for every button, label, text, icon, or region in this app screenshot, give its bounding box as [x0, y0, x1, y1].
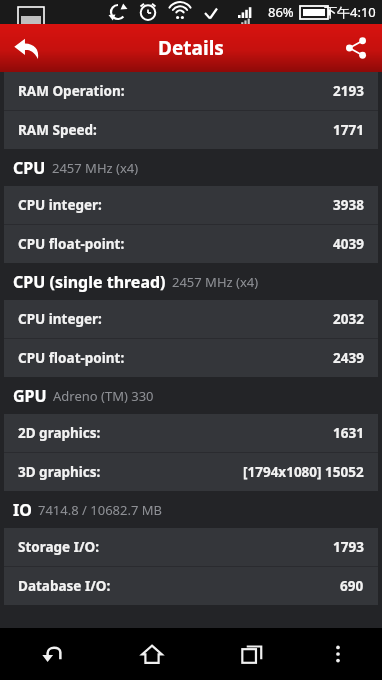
staticText: Database I/O:	[18, 577, 111, 595]
staticText: 1631	[333, 424, 364, 442]
staticText: RAM Operation:	[18, 82, 125, 100]
staticText: 2032	[333, 310, 364, 328]
button[interactable]: CPU float-point:	[4, 225, 378, 263]
button[interactable]: CPU float-point:	[4, 339, 378, 377]
staticText: 3D graphics:	[18, 463, 101, 481]
staticText: RAM Speed:	[18, 121, 97, 139]
staticText: GPU	[13, 385, 47, 407]
staticText: 86%	[268, 3, 294, 21]
staticText: 2D graphics:	[18, 424, 101, 442]
staticText: 7414.8 / 10682.7 MB	[38, 501, 162, 519]
staticText: 690	[340, 577, 364, 595]
button[interactable]: RAM Speed:	[4, 111, 378, 149]
staticText: 2457 MHz (x4)	[172, 273, 259, 291]
button[interactable]: CPU integer:	[4, 186, 378, 224]
staticText: Details	[158, 35, 224, 61]
staticText: 4039	[333, 235, 364, 253]
staticText: 1793	[333, 538, 364, 556]
button[interactable]: Storage I/O:	[4, 528, 378, 566]
staticText: 下午4:10	[324, 3, 376, 21]
staticText: 2439	[333, 349, 364, 367]
staticText: Adreno (TM) 330	[53, 387, 154, 405]
button[interactable]: Database I/O:	[4, 567, 378, 605]
button[interactable]: RAM Operation:	[4, 72, 378, 110]
button[interactable]: Back	[0, 24, 52, 72]
button[interactable]: CPU integer:	[4, 300, 378, 338]
button[interactable]: Back	[27, 628, 77, 680]
staticText: 2193	[333, 82, 364, 100]
staticText: Storage I/O:	[18, 538, 100, 556]
button[interactable]: Home	[127, 628, 177, 680]
staticText: 1771	[333, 121, 364, 139]
staticText: CPU (single thread)	[13, 271, 166, 293]
staticText: 2457 MHz (x4)	[52, 159, 139, 177]
staticText: 3938	[333, 196, 364, 214]
staticText: CPU integer:	[18, 310, 102, 328]
staticText: CPU float-point:	[18, 349, 125, 367]
staticText: [1794x1080] 15052	[243, 463, 364, 481]
staticText: CPU float-point:	[18, 235, 125, 253]
button[interactable]: Recents	[227, 628, 277, 680]
staticText: IO	[13, 499, 32, 521]
button[interactable]: 3D graphics:	[4, 453, 378, 491]
button[interactable]: Share	[330, 24, 382, 72]
staticText: CPU integer:	[18, 196, 102, 214]
staticText: CPU	[13, 157, 46, 179]
button[interactable]: 2D graphics:	[4, 414, 378, 452]
button[interactable]: More options	[313, 628, 363, 680]
